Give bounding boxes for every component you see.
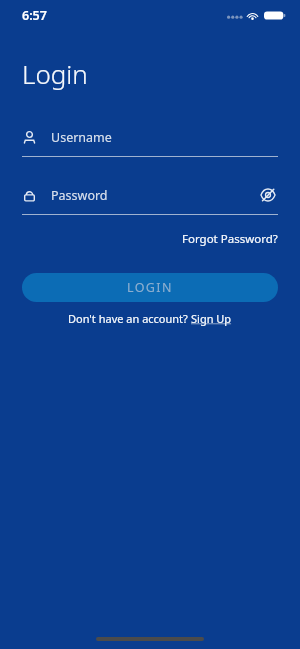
staticText: LOGIN [127, 279, 173, 296]
button[interactable]: Forgot Password? [182, 227, 278, 251]
staticText: Username [51, 129, 112, 146]
button[interactable]: Show password [258, 185, 278, 205]
staticText: Login [22, 56, 88, 91]
staticText: Password [51, 187, 108, 204]
staticText: Don't have an account? [68, 311, 191, 326]
button[interactable]: Sign Up [191, 311, 232, 326]
button[interactable]: LOGIN [22, 273, 278, 302]
button[interactable]: Username [22, 125, 278, 157]
staticText: 6:57 [22, 7, 47, 24]
button[interactable]: Password [22, 183, 278, 215]
